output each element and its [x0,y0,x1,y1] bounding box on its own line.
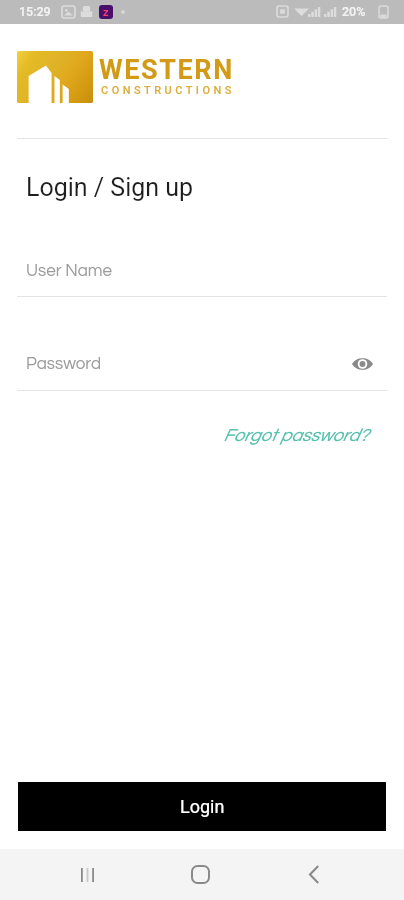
staticText: WESTERN [99,54,234,86]
button[interactable]: Home [170,849,231,900]
staticText: Forgot password? [223,426,368,445]
staticText: z [103,6,109,19]
staticText: Login [180,796,225,817]
button[interactable]: Back [283,849,344,900]
staticText: CONSTRUCTIONS [101,84,235,97]
staticText: User Name [26,262,113,280]
staticText: Login / Sign up [26,173,194,202]
button[interactable]: Show password [345,347,379,381]
button[interactable]: Login [18,782,386,831]
staticText: 15:29 [19,4,51,19]
staticText: Password [26,355,102,373]
button[interactable]: Recent apps [57,849,118,900]
staticText: 20% [342,4,366,19]
button[interactable]: Forgot password? [217,421,374,450]
